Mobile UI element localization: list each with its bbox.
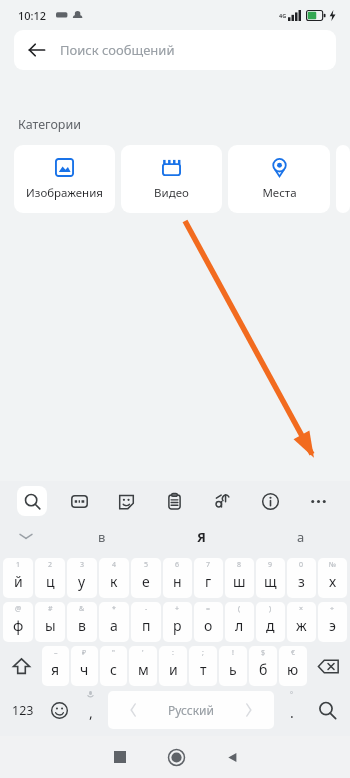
staticText: – [54, 648, 58, 658]
button[interactable]: ' [129, 646, 157, 686]
button[interactable]: Я [152, 521, 251, 553]
button[interactable]: Emoji [44, 688, 75, 732]
button[interactable]: Backspace [308, 644, 348, 688]
staticText: 7 [206, 560, 211, 570]
button[interactable]: № [318, 558, 347, 598]
button[interactable]: " [100, 646, 127, 686]
button[interactable]: Shift [2, 644, 41, 688]
button[interactable]: Translate [198, 481, 246, 521]
staticText: ю [287, 660, 299, 679]
button[interactable]: в [52, 521, 152, 553]
button[interactable]: 4 [99, 558, 129, 598]
button[interactable]: Видео [121, 145, 222, 213]
staticText: 3 [80, 560, 85, 570]
button[interactable]: Home [148, 736, 204, 778]
button[interactable]: ÷ [318, 602, 347, 642]
staticText: 1 [16, 560, 21, 570]
staticText: л [235, 616, 244, 635]
staticText: ) [269, 604, 272, 614]
button[interactable]: 9 [256, 558, 285, 598]
staticText: € [291, 648, 296, 658]
button[interactable]: Stickers [102, 481, 150, 521]
button[interactable]: Места [228, 145, 330, 213]
button[interactable]: # [35, 602, 65, 642]
button[interactable]: Back [14, 30, 336, 70]
staticText: о [204, 616, 213, 635]
button[interactable]: ) [256, 602, 285, 642]
button[interactable]: Back [204, 736, 260, 778]
button[interactable]: @ [3, 602, 33, 642]
button[interactable]: Period [276, 688, 307, 732]
button[interactable]: Изображения [14, 145, 115, 213]
button[interactable]: Comma [75, 688, 106, 732]
button[interactable]: 6 [163, 558, 192, 598]
other: Back [28, 41, 46, 59]
button[interactable]: Info [246, 481, 294, 521]
button[interactable]: 123 [2, 688, 44, 732]
staticText: х [329, 572, 337, 591]
button[interactable]: 8 [225, 558, 254, 598]
staticText: Я [197, 528, 206, 546]
staticText: е [142, 572, 150, 591]
staticText: ц [46, 572, 55, 591]
button[interactable]: + [163, 602, 192, 642]
button[interactable]: ! [219, 646, 247, 686]
staticText: ( [238, 604, 241, 614]
staticText: ш [233, 572, 246, 591]
button[interactable]: Expand suggestions [0, 521, 52, 553]
button[interactable]: ₽ [71, 646, 98, 686]
button[interactable]: 1 [3, 558, 33, 598]
button[interactable]: × [287, 602, 316, 642]
staticText: Поиск сообщений [60, 41, 175, 59]
button[interactable]: More options [294, 481, 342, 521]
button[interactable]: Space [108, 691, 274, 729]
staticText: # [48, 604, 53, 614]
button[interactable]: Search [307, 688, 348, 732]
staticText: а [297, 528, 305, 546]
staticText: , [89, 703, 93, 722]
button[interactable]: 5 [131, 558, 161, 598]
button[interactable]: ( [225, 602, 254, 642]
staticText: 4G [279, 12, 287, 19]
staticText: в [78, 616, 86, 635]
staticText: а [110, 616, 118, 635]
staticText: н [173, 572, 182, 591]
staticText: @ [15, 604, 22, 614]
button[interactable]: Recent apps [91, 736, 148, 778]
button[interactable]: & [67, 602, 97, 642]
staticText: 2 [48, 560, 53, 570]
button[interactable]: 7 [194, 558, 223, 598]
staticText: $ [261, 648, 266, 658]
button[interactable]: : [159, 646, 187, 686]
button[interactable]: $ [249, 646, 277, 686]
button[interactable]: * [99, 602, 129, 642]
staticText: 0 [299, 560, 304, 570]
staticText: 9 [268, 560, 273, 570]
button[interactable]: 2 [35, 558, 65, 598]
button[interactable]: Search [8, 481, 55, 521]
staticText: б [259, 660, 268, 679]
button[interactable]: - [131, 602, 161, 642]
staticText: - [145, 604, 148, 614]
staticText: Русский [168, 702, 214, 718]
staticText: + [175, 604, 180, 614]
staticText: ° [290, 690, 293, 700]
staticText: ÷ [330, 604, 335, 614]
staticText: = [206, 604, 211, 614]
button[interactable]: – [42, 646, 69, 686]
staticText: ₽ [82, 648, 87, 658]
button[interactable]: Clipboard [150, 481, 198, 521]
button[interactable]: € [279, 646, 307, 686]
staticText: э [329, 616, 336, 635]
button[interactable]: = [194, 602, 223, 642]
staticText: к [110, 572, 118, 591]
button[interactable]: GIF [55, 481, 102, 521]
staticText: г [205, 572, 212, 591]
button[interactable]: 3 [67, 558, 97, 598]
staticText: т [200, 660, 207, 679]
button[interactable]: 0 [287, 558, 316, 598]
staticText: ф [13, 616, 24, 635]
button[interactable]: ; [189, 646, 217, 686]
button[interactable]: а [251, 521, 350, 553]
